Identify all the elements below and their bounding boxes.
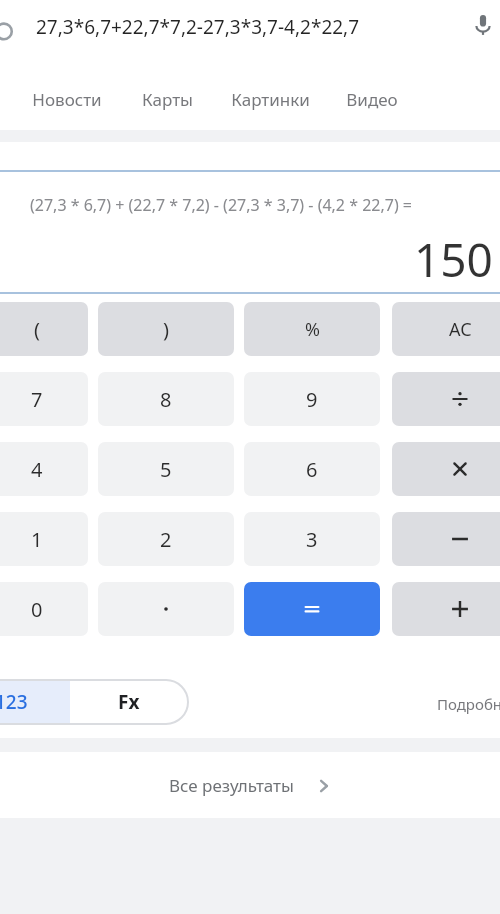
staticText: 123 [0, 689, 28, 715]
button[interactable]: 5 [98, 442, 234, 496]
staticText: 1 [31, 526, 43, 553]
button[interactable]: Картинки [229, 82, 312, 117]
button[interactable]: 6 [244, 442, 380, 496]
button[interactable]: ( [0, 302, 88, 356]
staticText: ( [34, 316, 40, 343]
staticText: 3 [306, 526, 318, 553]
button[interactable]: Fx [70, 680, 188, 724]
button[interactable]: Карты [140, 82, 195, 117]
button[interactable]: 2 [98, 512, 234, 566]
button[interactable] [98, 582, 234, 636]
staticText: 8 [160, 386, 172, 413]
button[interactable]: % [244, 302, 380, 356]
staticText: AC [449, 317, 472, 342]
button[interactable]: 1 [0, 512, 88, 566]
button[interactable]: Новости [30, 82, 104, 117]
button[interactable]: 7 [0, 372, 88, 426]
staticText: 0 [31, 596, 43, 623]
staticText: 6 [306, 456, 318, 483]
staticText: Карты [142, 88, 193, 111]
button[interactable]: 123 [0, 680, 70, 724]
button[interactable]: 8 [98, 372, 234, 426]
staticText: Картинки [231, 88, 310, 111]
button[interactable]: 4 [0, 442, 88, 496]
staticText: 4 [31, 456, 43, 483]
button[interactable] [244, 582, 380, 636]
staticText: % [305, 317, 320, 342]
staticText: 7 [31, 386, 43, 413]
button[interactable] [392, 372, 500, 426]
button[interactable]: Все результаты [0, 752, 500, 818]
staticText: Новости [32, 88, 102, 111]
button[interactable]: Voice search [466, 8, 500, 42]
button[interactable]: Видео [344, 82, 400, 117]
other: Search [0, 20, 18, 46]
staticText: 2 [160, 526, 172, 553]
staticText: 9 [306, 386, 318, 413]
staticText: 27,3*6,7+22,7*7,2-27,3*3,7-4,2*22,7 [36, 14, 360, 40]
staticText: 5 [160, 456, 172, 483]
staticText: ) [163, 316, 169, 343]
staticText: (27,3 * 6,7) + (22,7 * 7,2) - (27,3 * 3,… [30, 194, 413, 216]
button[interactable] [392, 512, 500, 566]
staticText: Fx [118, 689, 140, 715]
button[interactable] [392, 442, 500, 496]
button[interactable]: ) [98, 302, 234, 356]
button[interactable]: AC [392, 302, 500, 356]
button[interactable] [392, 582, 500, 636]
button[interactable]: 3 [244, 512, 380, 566]
button[interactable]: 9 [244, 372, 380, 426]
staticText: Видео [346, 88, 398, 111]
button[interactable]: 0 [0, 582, 88, 636]
button[interactable]: Подробнее [437, 694, 500, 714]
staticText: Все результаты [169, 774, 294, 797]
staticText: 150 [414, 228, 493, 291]
button[interactable]: Search [0, 0, 500, 62]
